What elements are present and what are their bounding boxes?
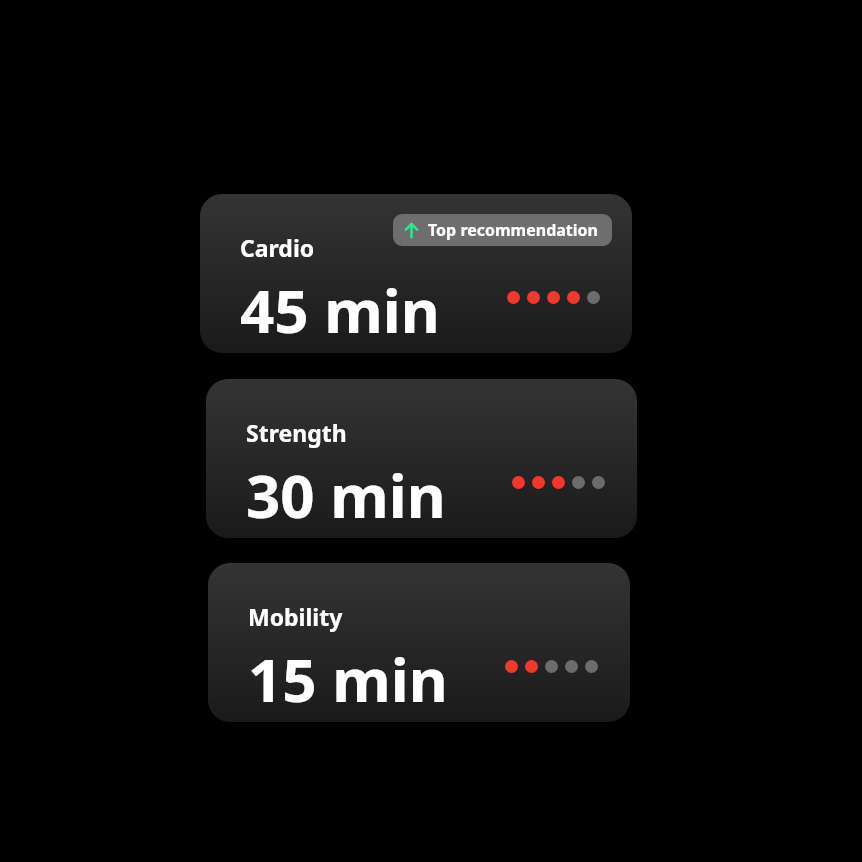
staticText: 15 min [248, 638, 448, 720]
staticText: Strength [246, 417, 347, 448]
button[interactable]: Mobility [208, 563, 630, 722]
button[interactable]: Top recommendation [393, 214, 612, 246]
staticText: Cardio [240, 232, 315, 263]
staticText: 45 min [240, 269, 440, 351]
staticText: 30 min [246, 454, 446, 536]
staticText: Top recommendation [428, 219, 599, 241]
staticText: Mobility [248, 601, 343, 632]
button[interactable]: Strength [206, 379, 637, 538]
button[interactable]: Top recommendation [200, 194, 632, 353]
